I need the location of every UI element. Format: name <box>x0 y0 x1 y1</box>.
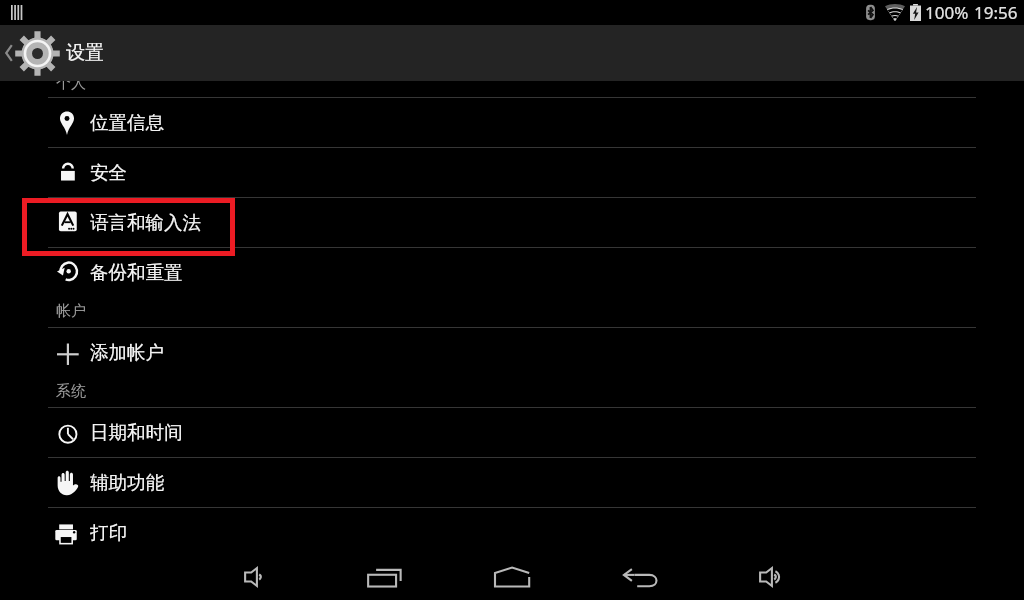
button[interactable]: 备份和重置 <box>0 248 1024 297</box>
staticText: 辅助功能 <box>90 471 164 494</box>
button[interactable]: Volume up <box>747 553 793 600</box>
staticText: 系统 <box>56 382 86 401</box>
staticText: 日期和时间 <box>90 421 183 444</box>
button[interactable]: 语言和输入法 <box>0 198 1024 247</box>
staticText: 帐户 <box>56 302 86 321</box>
staticText: 100% <box>925 1 969 24</box>
button[interactable]: 安全 <box>0 148 1024 197</box>
staticText: 语言和输入法 <box>90 211 201 234</box>
staticText: 打印 <box>90 521 127 544</box>
button[interactable]: 位置信息 <box>0 98 1024 147</box>
button[interactable]: Recent apps <box>363 553 409 600</box>
button[interactable]: 日期和时间 <box>0 408 1024 457</box>
button[interactable]: 打印 <box>0 508 1024 557</box>
button[interactable]: Volume down <box>232 553 278 600</box>
staticText: 添加帐户 <box>90 341 164 364</box>
button[interactable]: Home <box>491 553 537 600</box>
staticText: 个人 <box>56 74 86 93</box>
staticText: 安全 <box>90 161 127 184</box>
staticText: 设置 <box>66 41 104 65</box>
button[interactable]: Up <box>0 25 60 81</box>
button[interactable]: Back <box>618 553 664 600</box>
staticText: 位置信息 <box>90 111 164 134</box>
button[interactable]: 辅助功能 <box>0 458 1024 507</box>
staticText: 备份和重置 <box>90 261 183 284</box>
staticText: 19:56 <box>974 1 1018 24</box>
button[interactable]: 添加帐户 <box>0 328 1024 377</box>
